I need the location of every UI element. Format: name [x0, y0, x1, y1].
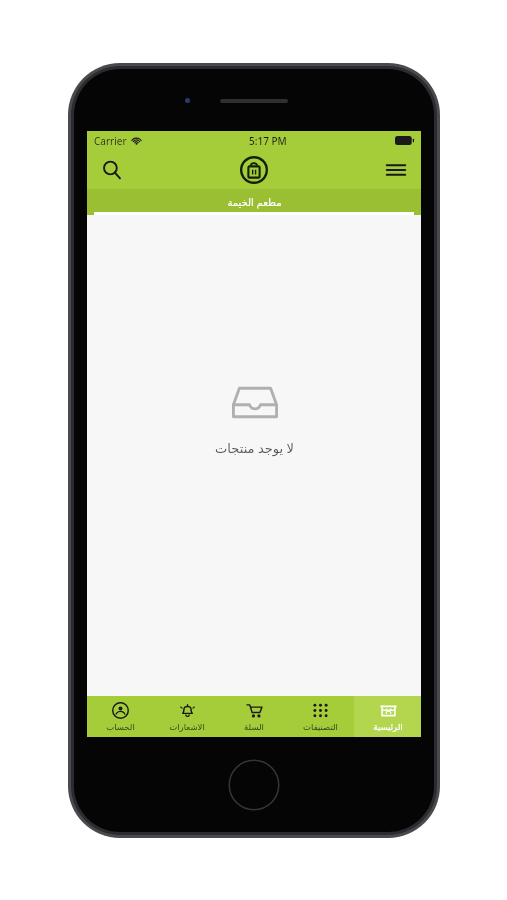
- button[interactable]: الحساب: [87, 696, 153, 737]
- button[interactable]: السلة: [220, 696, 287, 737]
- staticText: التصنيفات: [303, 722, 338, 732]
- button[interactable]: الاشعارات: [153, 696, 220, 737]
- button[interactable]: Menu: [379, 153, 413, 187]
- staticText: الاشعارات: [169, 722, 205, 732]
- staticText: Carrier: [94, 134, 127, 148]
- staticText: لا يوجد منتجات: [215, 439, 294, 457]
- button[interactable]: Search: [95, 153, 129, 187]
- button[interactable]: App logo: [237, 153, 271, 187]
- button[interactable]: الرئيسية: [354, 696, 421, 737]
- staticText: 5:17 PM: [249, 134, 287, 148]
- staticText: الرئيسية: [373, 722, 403, 732]
- staticText: السلة: [244, 722, 264, 732]
- staticText: مطعم الخيمة: [227, 195, 282, 209]
- button[interactable]: التصنيفات: [287, 696, 354, 737]
- staticText: الحساب: [106, 722, 135, 732]
- button[interactable]: مطعم الخيمة: [87, 189, 421, 215]
